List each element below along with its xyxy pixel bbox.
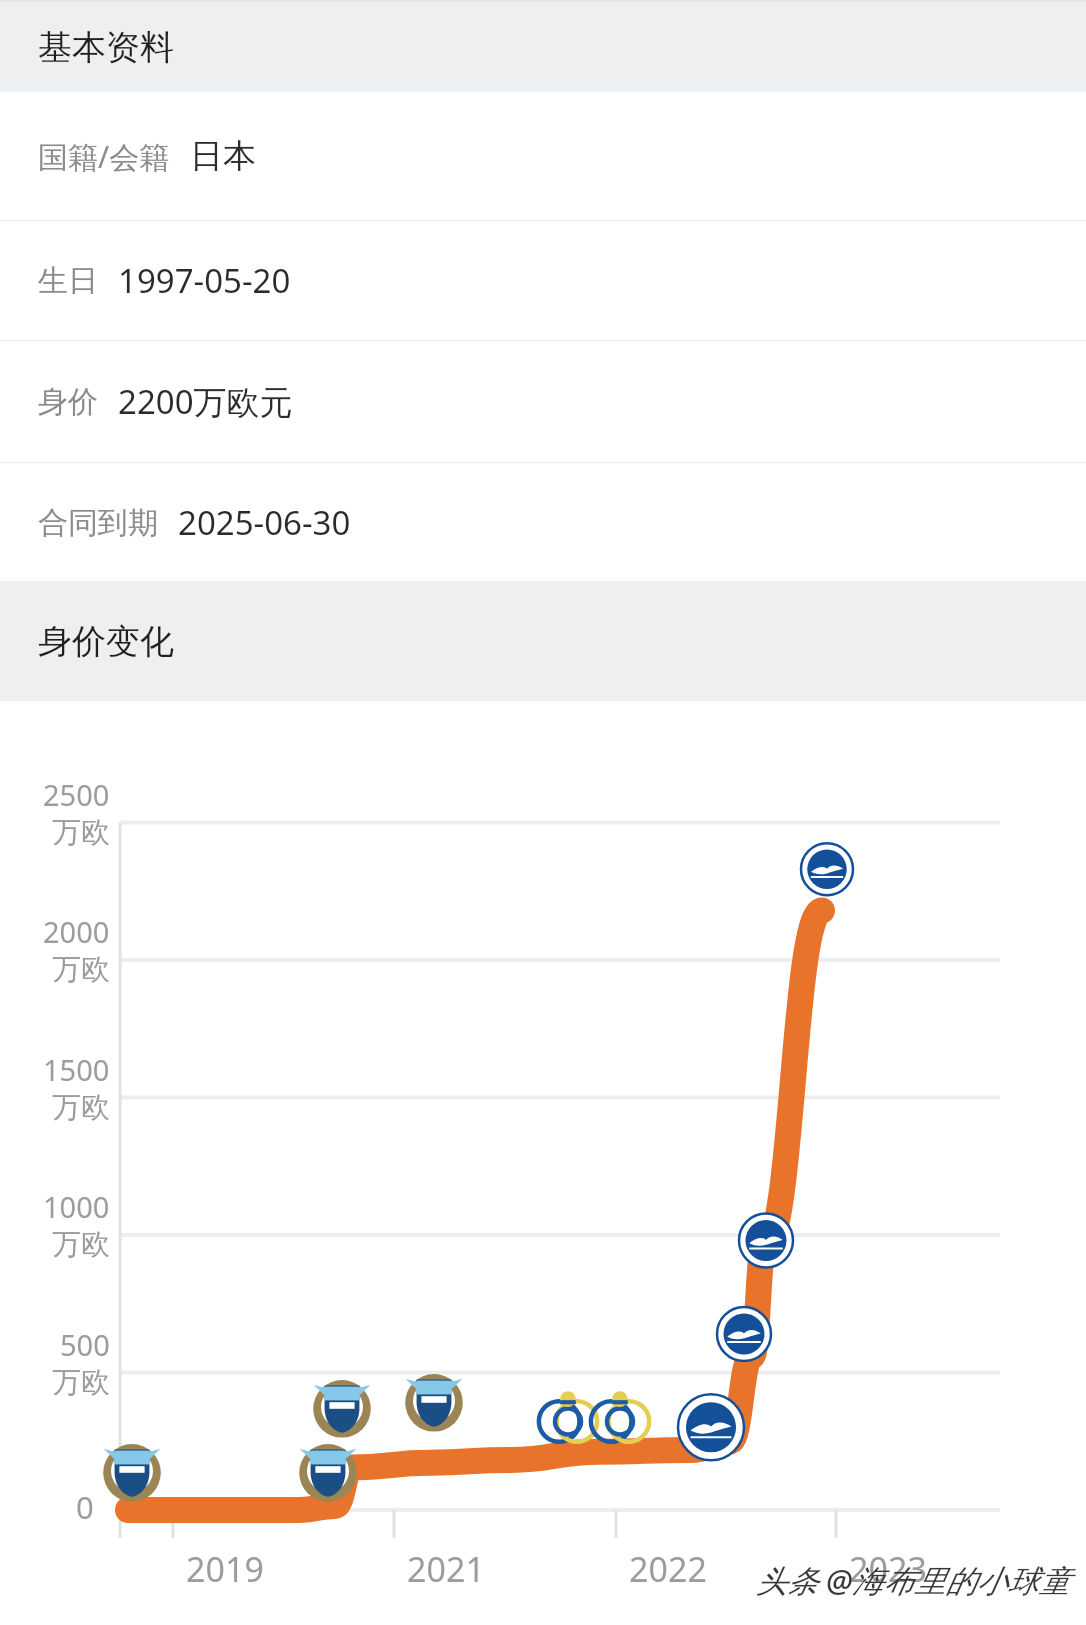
staticText: 万欧 [52,1226,110,1263]
staticText: 身价 [38,383,98,421]
button[interactable]: 身价 [0,341,1086,462]
staticText: 万欧 [52,951,110,988]
staticText: 2021 [394,1546,498,1592]
staticText: 2500 [43,775,110,814]
staticText: 2200万欧元 [118,379,293,424]
staticText: 2019 [173,1546,277,1592]
staticText: 万欧 [52,814,110,851]
button[interactable]: 身价变化 [0,581,1086,701]
staticText: 1997-05-20 [118,258,291,303]
staticText: 基本资料 [38,26,174,69]
button[interactable]: 生日 [0,221,1086,340]
staticText: 2000 [43,912,110,951]
staticText: 2025-06-30 [178,500,351,545]
staticText: 万欧 [52,1089,110,1126]
staticText: 500 [60,1325,110,1364]
button[interactable]: 合同到期 [0,463,1086,581]
staticText: 日本 [190,135,256,177]
button[interactable]: 国籍/会籍 [0,92,1086,220]
staticText: 生日 [38,262,98,300]
staticText: 1500 [43,1050,110,1089]
staticText: 1000 [43,1187,110,1226]
staticText: 头条 @海布里的小球童 [756,1559,1070,1601]
staticText: 身价变化 [38,620,174,663]
staticText: 2023 [836,1546,940,1592]
staticText: 2022 [616,1546,720,1592]
button[interactable]: 基本资料 [0,2,1086,92]
staticText: 万欧 [52,1364,110,1401]
staticText: 国籍/会籍 [38,136,170,177]
staticText: 合同到期 [38,504,158,542]
staticText: 0 [76,1486,94,1528]
